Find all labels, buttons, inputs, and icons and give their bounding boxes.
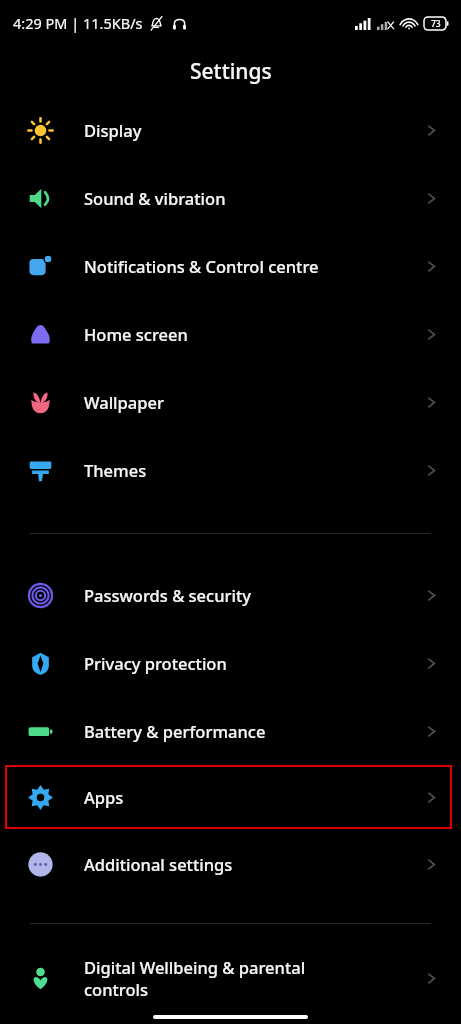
button[interactable]: Wallpaper	[0, 368, 461, 436]
button[interactable]: Digital Wellbeing & parental	[0, 946, 461, 1010]
staticText: 4:29 PM | 11.5KB/s	[13, 13, 143, 33]
staticText: controls	[84, 978, 149, 1000]
button[interactable]: Notifications & Control centre	[0, 232, 461, 300]
button[interactable]: Apps	[5, 765, 452, 829]
button[interactable]: Themes	[0, 436, 461, 504]
staticText: Wallpaper	[84, 391, 164, 413]
button[interactable]: Passwords & security	[0, 561, 461, 629]
staticText: Digital Wellbeing & parental	[84, 956, 306, 978]
button[interactable]: Display	[0, 96, 461, 164]
button[interactable]: Home screen	[0, 300, 461, 368]
staticText: Settings	[190, 57, 272, 86]
staticText: Display	[84, 119, 142, 141]
staticText: Privacy protection	[84, 652, 227, 674]
staticText: Notifications & Control centre	[84, 255, 319, 277]
staticText: Additional settings	[84, 853, 233, 875]
staticText: Sound & vibration	[84, 187, 226, 209]
button[interactable]: Sound & vibration	[0, 164, 461, 232]
staticText: Home screen	[84, 323, 188, 345]
staticText: 73	[431, 18, 441, 30]
button[interactable]: Battery & performance	[0, 697, 461, 765]
other: Silent mode	[149, 16, 164, 31]
staticText: Themes	[84, 459, 147, 481]
staticText: Apps	[84, 786, 124, 808]
staticText: Battery & performance	[84, 720, 266, 742]
other: Headset	[172, 16, 187, 31]
button[interactable]: Privacy protection	[0, 629, 461, 697]
button[interactable]: Additional settings	[0, 829, 461, 899]
staticText: Passwords & security	[84, 584, 251, 606]
